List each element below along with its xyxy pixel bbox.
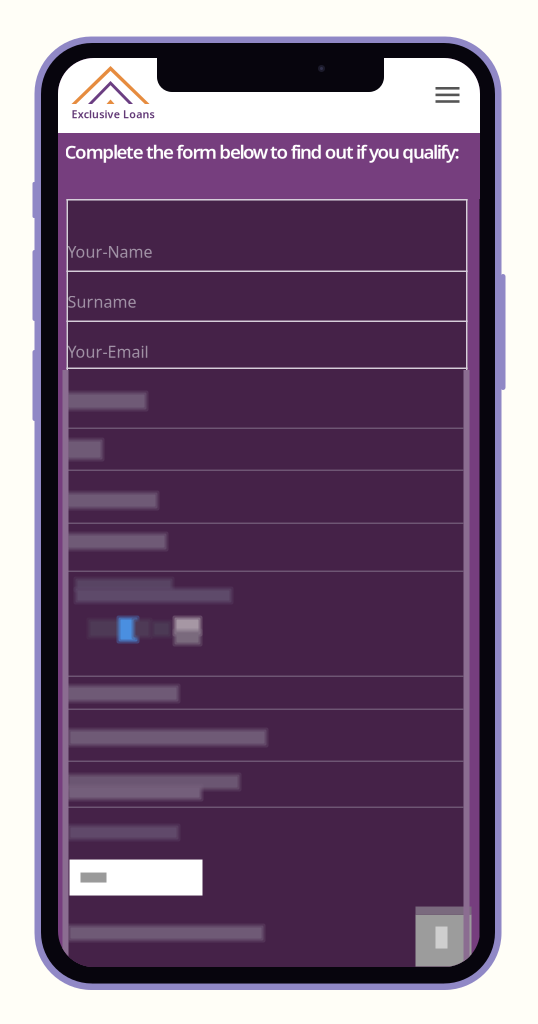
staticText: Your-Email <box>67 341 148 362</box>
staticText: Surname <box>67 291 136 312</box>
staticText: Complete the form below to find out if y… <box>64 139 459 164</box>
button[interactable]: Menu <box>423 74 471 116</box>
staticText: Exclusive Loans <box>71 107 155 121</box>
button[interactable]: Exclusive Loans home <box>71 66 151 121</box>
staticText: Your-Name <box>67 241 152 262</box>
